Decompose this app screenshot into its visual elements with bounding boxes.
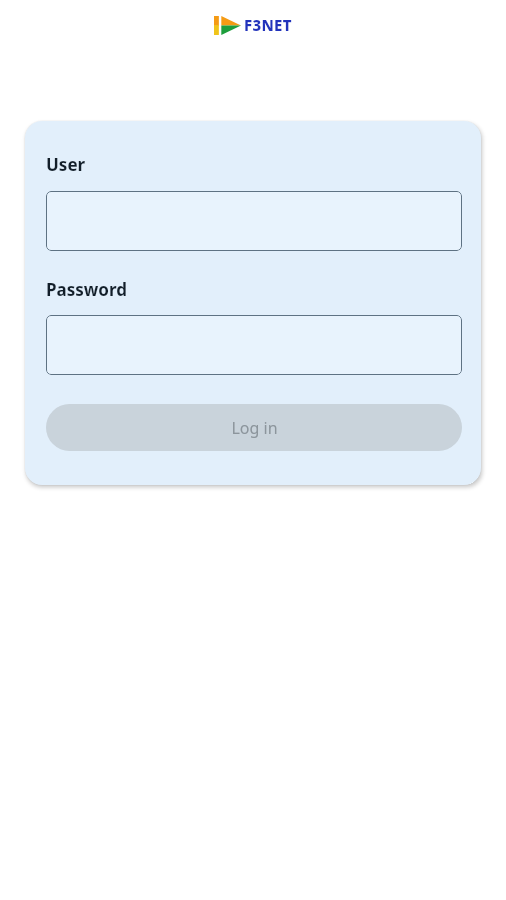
staticText: User	[46, 153, 86, 176]
staticText: Log in	[231, 417, 278, 439]
button[interactable]: Log in	[46, 404, 462, 451]
button[interactable]: Password input field	[46, 315, 462, 375]
button[interactable]: User input field	[46, 191, 462, 251]
staticText: Password	[46, 278, 127, 301]
other: F3NET logo	[214, 16, 241, 35]
staticText: F3NET	[244, 15, 292, 35]
